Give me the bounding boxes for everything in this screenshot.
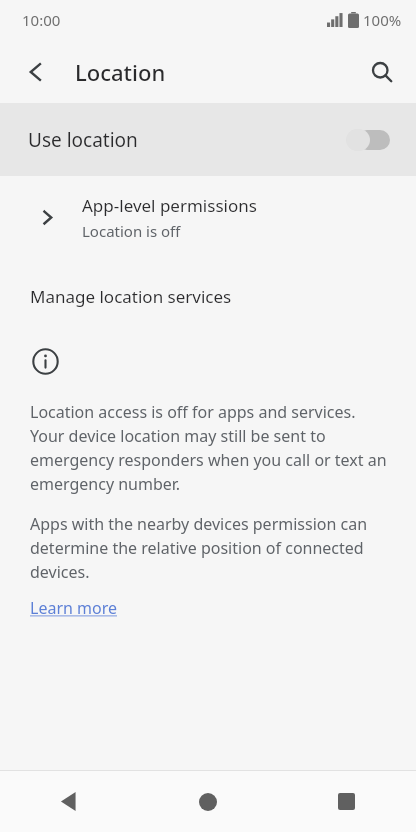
button[interactable]: Home (138, 771, 277, 832)
staticText: Manage location services (30, 285, 232, 308)
button[interactable]: Back (0, 771, 138, 832)
staticText: Location access is off for apps and serv… (30, 401, 390, 495)
staticText: Learn more (30, 597, 117, 619)
staticText: Use location (28, 127, 346, 153)
staticText: App-level permissions (82, 194, 257, 217)
button[interactable]: Recent apps (277, 771, 416, 832)
staticText: 100% (363, 10, 402, 30)
button[interactable]: Learn more (30, 597, 117, 619)
button[interactable]: App-level permissions (0, 176, 416, 258)
staticText: Location is off (82, 221, 181, 241)
button[interactable]: Use location (0, 103, 416, 176)
staticText: Apps with the nearby devices permission … (30, 513, 390, 583)
staticText: 10:00 (22, 10, 61, 30)
button[interactable]: Search (360, 50, 404, 94)
button[interactable]: Manage location services (0, 276, 416, 316)
staticText: Location (75, 57, 166, 87)
button[interactable]: Back (14, 50, 58, 94)
